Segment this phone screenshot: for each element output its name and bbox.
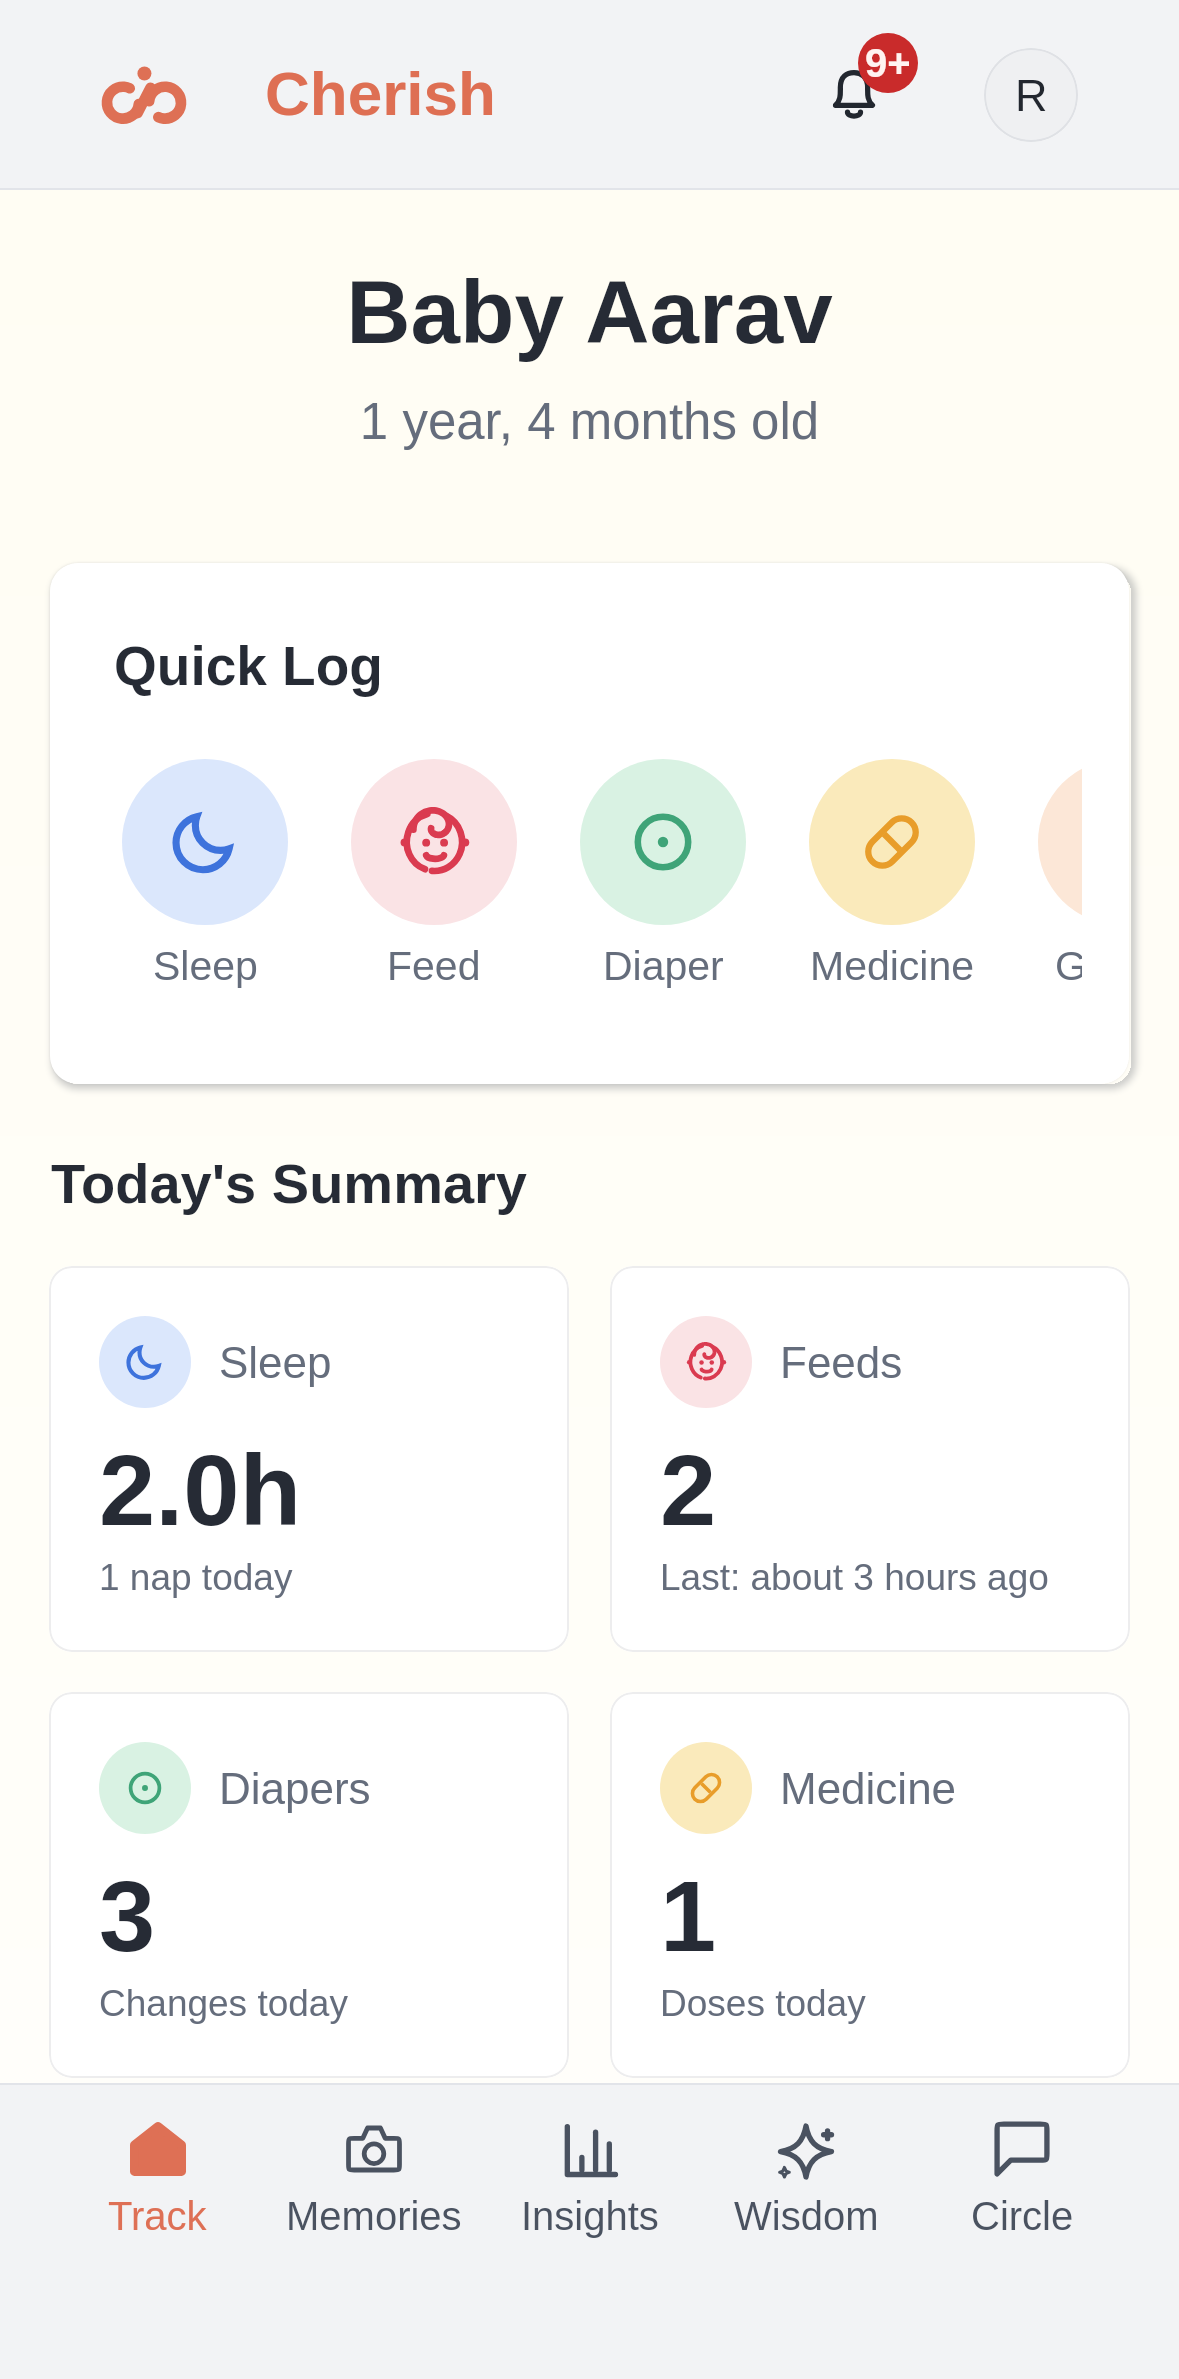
button[interactable]: Diapers [49,1692,569,2078]
staticText: Sleep [219,1338,332,1387]
staticText: Sleep [153,943,258,989]
staticText: Doses today [660,1983,866,2024]
staticText: Track [108,2194,207,2239]
staticText: Quick Log [114,635,383,696]
staticText: Feed [387,943,481,989]
button[interactable]: Wisdom [698,2121,914,2239]
button[interactable]: Medicine [809,759,975,989]
staticText: Diaper [603,943,724,989]
staticText: 1 year, 4 months old [0,393,1179,450]
staticText: R [1015,70,1048,120]
staticText: Cherish [265,59,496,128]
button[interactable]: Sleep [122,759,288,989]
button[interactable]: Cherish [101,59,506,128]
staticText: Diapers [219,1764,371,1813]
button[interactable]: Growth [1038,759,1082,989]
button[interactable]: Circle [914,2121,1130,2239]
staticText: 1 [660,1860,717,1973]
button[interactable]: Track [49,2121,266,2239]
staticText: Circle [971,2194,1074,2239]
button[interactable]: Diaper [580,759,746,989]
button[interactable]: Memories [266,2121,482,2239]
staticText: Medicine [810,943,975,989]
button[interactable]: Profile [984,48,1078,142]
button[interactable]: Insights [482,2121,698,2239]
staticText: Feeds [780,1338,903,1387]
staticText: 2.0h [99,1434,302,1547]
staticText: 9+ [865,41,911,86]
staticText: 3 [99,1860,156,1973]
button[interactable]: Feed [351,759,517,989]
staticText: Growth [1055,943,1082,989]
staticText: Wisdom [734,2194,879,2239]
staticText: Medicine [780,1764,957,1813]
staticText: Baby Aarav [0,262,1179,361]
staticText: 2 [660,1434,717,1547]
button[interactable]: Notifications [830,25,925,125]
staticText: Today's Summary [51,1152,527,1215]
staticText: Changes today [99,1983,348,2024]
staticText: Memories [286,2194,462,2239]
staticText: Insights [521,2194,659,2239]
button[interactable]: Medicine [610,1692,1130,2078]
button[interactable]: Sleep [49,1266,569,1652]
staticText: Last: about 3 hours ago [660,1557,1049,1598]
button[interactable]: Feeds [610,1266,1130,1652]
staticText: 1 nap today [99,1557,293,1598]
